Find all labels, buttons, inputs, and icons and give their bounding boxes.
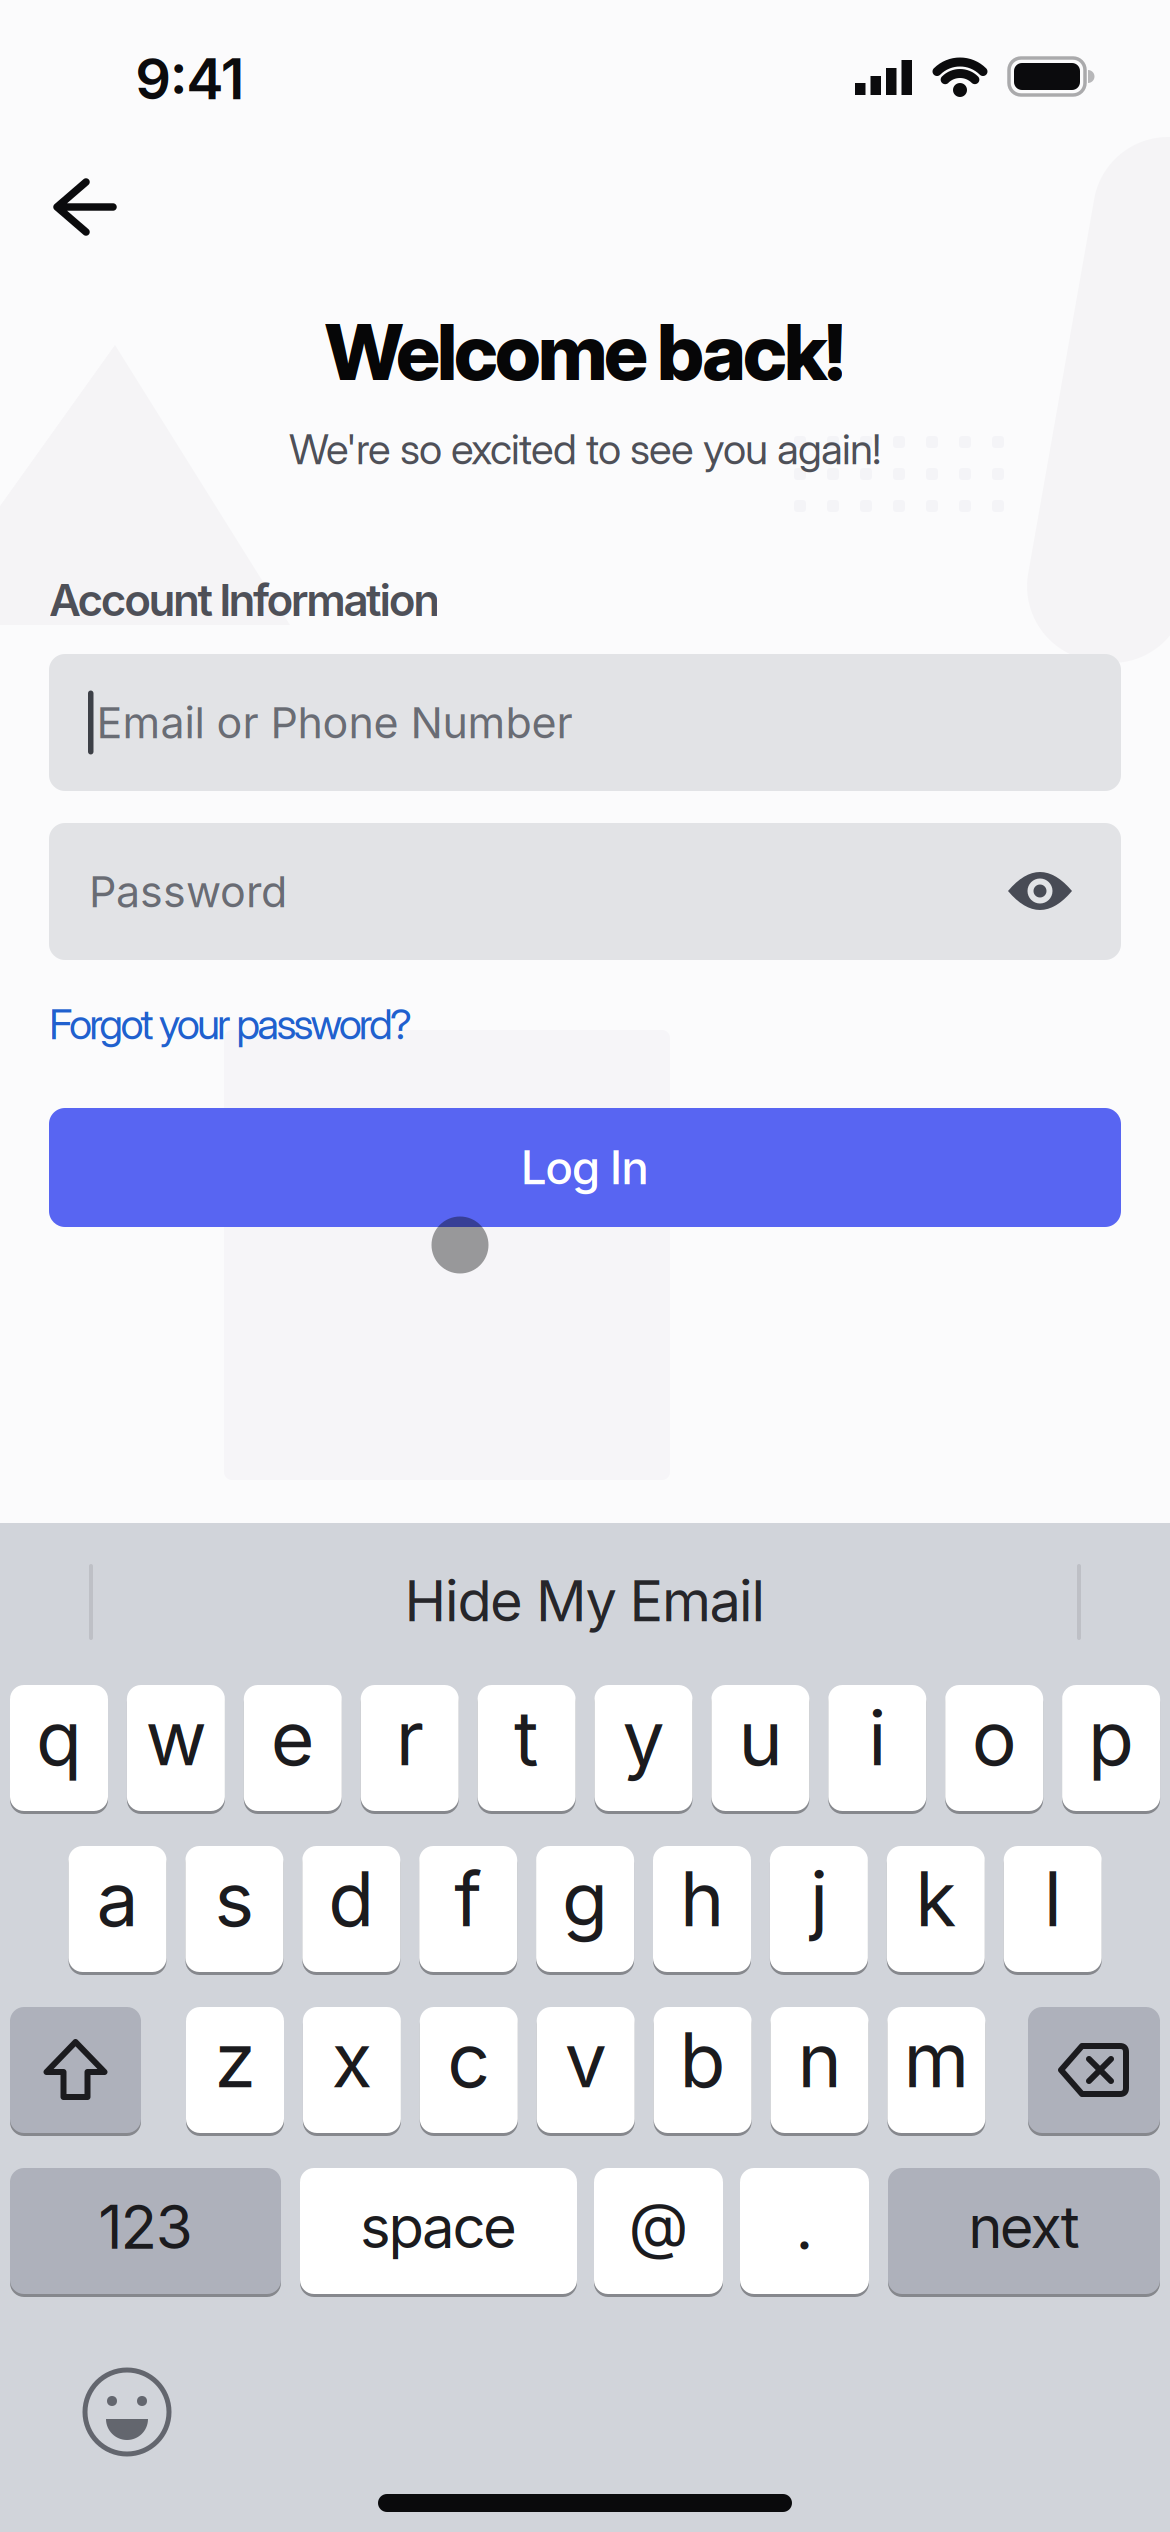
staticText: v bbox=[565, 2015, 607, 2105]
staticText: We're so excited to see you again! bbox=[289, 424, 881, 474]
button[interactable]: w bbox=[127, 1683, 225, 1812]
staticText: @ bbox=[628, 2187, 688, 2262]
button[interactable]: Forgot your password? bbox=[49, 999, 412, 1049]
staticText: Welcome back! bbox=[325, 305, 845, 399]
button[interactable]: m bbox=[887, 2005, 985, 2134]
button[interactable]: Show password bbox=[1006, 867, 1074, 915]
button[interactable]: o bbox=[945, 1683, 1043, 1812]
button[interactable]: u bbox=[711, 1683, 809, 1812]
staticText: space bbox=[360, 2192, 517, 2262]
staticText: m bbox=[903, 2015, 969, 2105]
button[interactable]: s bbox=[185, 1844, 283, 1973]
staticText: g bbox=[562, 1854, 608, 1944]
button[interactable]: v bbox=[537, 2005, 635, 2134]
staticText: c bbox=[447, 2015, 490, 2105]
button[interactable]: f bbox=[419, 1844, 517, 1973]
button[interactable]: z bbox=[186, 2005, 284, 2134]
button[interactable]: Delete bbox=[1028, 2005, 1160, 2134]
button[interactable]: d bbox=[302, 1844, 400, 1973]
staticText: h bbox=[680, 1854, 724, 1944]
staticText: d bbox=[328, 1854, 374, 1944]
staticText: q bbox=[36, 1693, 82, 1783]
button[interactable]: a bbox=[68, 1844, 166, 1973]
button[interactable]: Shift bbox=[10, 2005, 141, 2134]
button[interactable]: j bbox=[770, 1844, 868, 1973]
staticText: Password bbox=[89, 865, 287, 917]
button[interactable]: l bbox=[1004, 1844, 1102, 1973]
staticText: j bbox=[810, 1854, 828, 1944]
staticText: y bbox=[622, 1693, 664, 1783]
staticText: Email or Phone Number bbox=[96, 696, 572, 748]
staticText: n bbox=[797, 2015, 841, 2105]
staticText: e bbox=[271, 1693, 315, 1783]
staticText: b bbox=[680, 2015, 726, 2105]
button[interactable]: Back bbox=[30, 147, 150, 267]
staticText: p bbox=[1088, 1693, 1134, 1783]
staticText: t bbox=[514, 1693, 539, 1783]
button[interactable]: Emoji bbox=[82, 2367, 172, 2457]
staticText: f bbox=[454, 1854, 482, 1944]
button[interactable]: space bbox=[300, 2166, 577, 2295]
button[interactable]: r bbox=[361, 1683, 459, 1812]
button[interactable]: t bbox=[478, 1683, 576, 1812]
staticText: Account Information bbox=[49, 573, 440, 627]
staticText: 9:41 bbox=[135, 45, 245, 113]
staticText: s bbox=[214, 1854, 254, 1944]
button[interactable]: x bbox=[303, 2005, 401, 2134]
button[interactable]: i bbox=[828, 1683, 926, 1812]
staticText: w bbox=[145, 1693, 206, 1783]
staticText: r bbox=[396, 1693, 424, 1783]
staticText: . bbox=[795, 2189, 813, 2264]
button[interactable]: next bbox=[888, 2166, 1160, 2295]
staticText: Hide My Email bbox=[404, 1567, 765, 1635]
button[interactable]: Password bbox=[49, 823, 1121, 960]
button[interactable]: q bbox=[10, 1683, 108, 1812]
staticText: 123 bbox=[98, 2191, 193, 2263]
button[interactable]: h bbox=[653, 1844, 751, 1973]
button[interactable]: k bbox=[887, 1844, 985, 1973]
staticText: Log In bbox=[521, 1140, 649, 1195]
button[interactable]: . bbox=[740, 2166, 869, 2295]
staticText: next bbox=[968, 2192, 1080, 2262]
button[interactable]: 123 bbox=[10, 2166, 281, 2295]
button[interactable]: c bbox=[420, 2005, 518, 2134]
staticText: o bbox=[972, 1693, 1017, 1783]
staticText: i bbox=[868, 1693, 886, 1783]
button[interactable]: Hide My Email bbox=[105, 1541, 1065, 1661]
staticText: u bbox=[738, 1693, 782, 1783]
button[interactable]: Email or Phone Number bbox=[49, 654, 1121, 791]
button[interactable]: y bbox=[594, 1683, 692, 1812]
button[interactable]: e bbox=[244, 1683, 342, 1812]
button[interactable]: @ bbox=[594, 2166, 723, 2295]
staticText: x bbox=[331, 2015, 372, 2105]
button[interactable]: b bbox=[654, 2005, 752, 2134]
button[interactable]: Log In bbox=[49, 1108, 1121, 1227]
button[interactable]: n bbox=[770, 2005, 868, 2134]
staticText: z bbox=[214, 2015, 255, 2105]
staticText: k bbox=[915, 1854, 956, 1944]
staticText: l bbox=[1044, 1854, 1062, 1944]
staticText: a bbox=[96, 1854, 138, 1944]
button[interactable]: p bbox=[1062, 1683, 1160, 1812]
button[interactable]: g bbox=[536, 1844, 634, 1973]
staticText: Forgot your password? bbox=[49, 999, 412, 1049]
